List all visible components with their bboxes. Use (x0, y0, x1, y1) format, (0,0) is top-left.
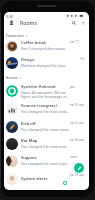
staticText: Rooms (6, 75, 18, 80)
button[interactable]: Coffee break (4, 37, 89, 54)
staticText: Steve: All awesome. We can figure out th… (21, 90, 69, 99)
staticText: Kick-off (21, 121, 36, 126)
staticText: 1h (80, 57, 84, 61)
button[interactable]: New room (74, 163, 84, 173)
button[interactable]: Search (69, 18, 78, 27)
button[interactable]: Finance (congrats) (4, 100, 89, 117)
staticText: Rooms (20, 19, 38, 26)
staticText: ea 12 ma (70, 103, 84, 107)
button[interactable]: System alerts (4, 170, 89, 187)
button[interactable]: Sysmiter Rebrand (4, 82, 89, 100)
button[interactable]: Favourites (4, 31, 89, 39)
staticText: Matthew changed the topic (21, 63, 66, 68)
staticText: nom putpr (70, 155, 84, 159)
staticText: Support (21, 155, 37, 160)
staticText: You changed the room avatar (21, 144, 69, 149)
button[interactable]: Bar Map (4, 135, 89, 152)
staticText: ea 12 ma (70, 121, 84, 125)
staticText: 0:08 (6, 14, 14, 19)
staticText: ea 19 apr (70, 173, 84, 177)
button[interactable]: Rooms (4, 73, 89, 81)
staticText: Design (21, 57, 35, 62)
staticText: System alerts (21, 176, 48, 181)
staticText: Bar Map (21, 138, 38, 143)
staticText: Finance (congrats) (21, 103, 57, 108)
staticText: Kim: I changed their avatar (21, 46, 66, 51)
staticText: Coffee break (21, 40, 46, 45)
button[interactable]: More options (78, 18, 87, 27)
button[interactable]: Kick-off (4, 118, 89, 135)
button[interactable]: Support (4, 152, 89, 169)
button[interactable]: Profile (9, 20, 14, 25)
staticText: ea 14 ma (70, 138, 84, 142)
staticText: jan. Virpit (70, 85, 84, 89)
staticText: You changed the room topic (21, 161, 68, 166)
staticText: est 11 min (70, 40, 84, 44)
staticText: You changed the room name (21, 127, 69, 132)
staticText: Favourites (6, 33, 24, 38)
staticText: You changed the room avatar (21, 109, 69, 114)
button[interactable]: Design (4, 54, 89, 71)
staticText: Sysmiter Rebrand (21, 84, 56, 89)
